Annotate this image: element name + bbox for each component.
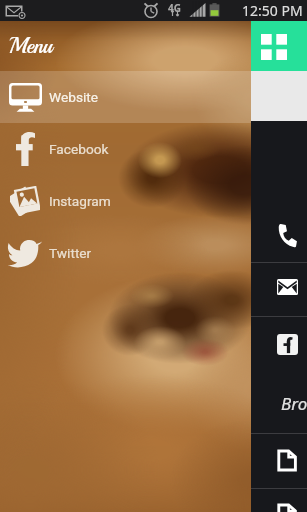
other: Call bbox=[277, 225, 298, 246]
other: Document bbox=[277, 450, 297, 471]
staticText: 4G bbox=[168, 1, 181, 15]
button[interactable]: Document bbox=[0, 434, 307, 489]
other: Email bbox=[277, 279, 298, 295]
button[interactable]: Email bbox=[0, 263, 307, 317]
staticText: Website bbox=[49, 89, 99, 105]
other: Facebook bbox=[277, 334, 298, 355]
staticText: Brochure bbox=[281, 392, 307, 415]
button[interactable]: Facebook bbox=[0, 317, 307, 434]
button[interactable]: Document bbox=[0, 488, 307, 512]
staticText: Twitter bbox=[49, 245, 92, 261]
staticText: Facebook bbox=[49, 141, 109, 157]
button[interactable]: Twitter bbox=[0, 227, 251, 279]
staticText: Instagram bbox=[49, 193, 111, 209]
other: Document bbox=[277, 504, 297, 512]
button[interactable]: Brochure bbox=[0, 371, 307, 433]
staticText: 12:50 PM bbox=[242, 1, 303, 20]
button[interactable]: Website bbox=[0, 71, 251, 123]
button[interactable]: Apps grid bbox=[261, 34, 287, 60]
staticText: Menu bbox=[9, 33, 53, 59]
button[interactable]: Facebook bbox=[0, 123, 251, 175]
button[interactable]: Call bbox=[0, 209, 307, 263]
button[interactable]: Instagram bbox=[0, 175, 251, 227]
